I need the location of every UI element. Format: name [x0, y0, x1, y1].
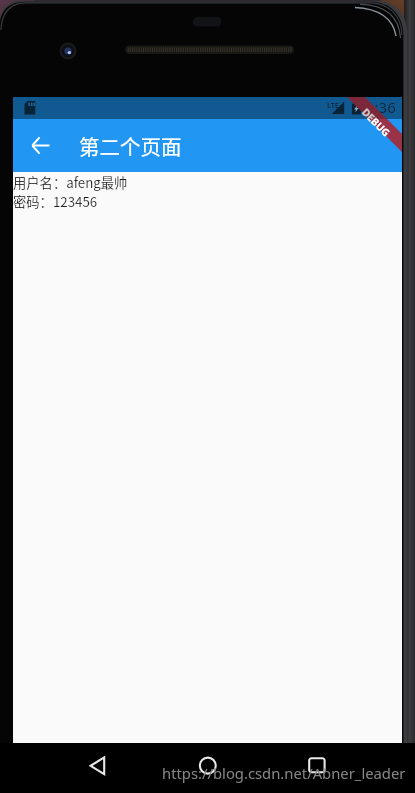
staticText: 用户名：afeng最帅	[13, 173, 128, 192]
staticText: 第二个页面	[79, 131, 182, 161]
button[interactable]: Back	[23, 128, 57, 162]
staticText: 1:36	[366, 97, 396, 117]
staticText: https://blog.csdn.net/Abner_leader	[162, 763, 406, 783]
staticText: 密码：123456	[13, 192, 98, 211]
staticText: LTE	[327, 101, 339, 111]
staticText: DEBUG	[359, 105, 394, 140]
